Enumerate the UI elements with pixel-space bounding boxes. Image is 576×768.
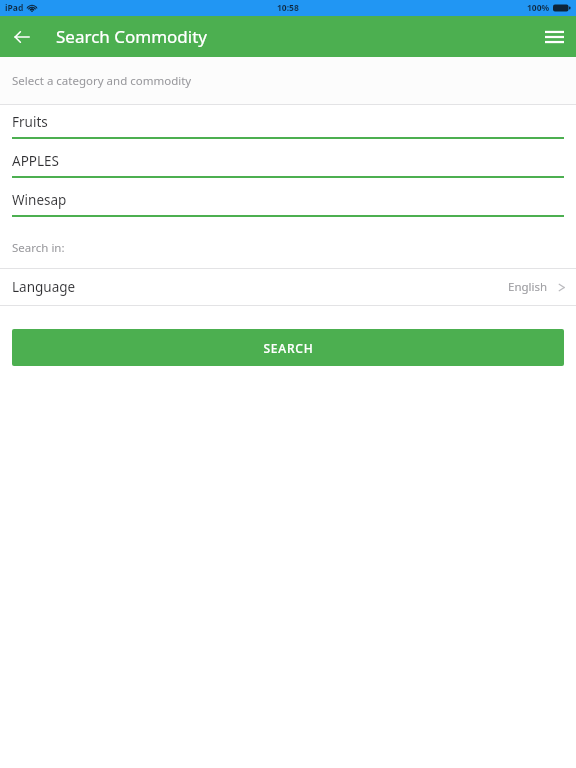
- button[interactable]: Winesap: [0, 183, 576, 222]
- staticText: Search in:: [12, 240, 65, 256]
- staticText: APPLES: [12, 152, 59, 170]
- staticText: 100%: [527, 2, 550, 14]
- staticText: Fruits: [12, 113, 48, 131]
- staticText: 10:58: [277, 2, 299, 14]
- button[interactable]: Fruits: [0, 105, 576, 144]
- staticText: iPad: [5, 2, 24, 14]
- button[interactable]: APPLES: [0, 144, 576, 183]
- button[interactable]: Language: [0, 269, 576, 305]
- button[interactable]: SEARCH: [12, 329, 564, 366]
- staticText: SEARCH: [263, 340, 314, 356]
- staticText: Select a category and commodity: [12, 73, 192, 89]
- staticText: English: [508, 279, 548, 295]
- button[interactable]: Menu: [532, 16, 576, 57]
- staticText: Winesap: [12, 191, 67, 209]
- staticText: Language: [12, 278, 76, 296]
- button[interactable]: Back: [0, 16, 44, 57]
- staticText: Search Commodity: [56, 25, 207, 48]
